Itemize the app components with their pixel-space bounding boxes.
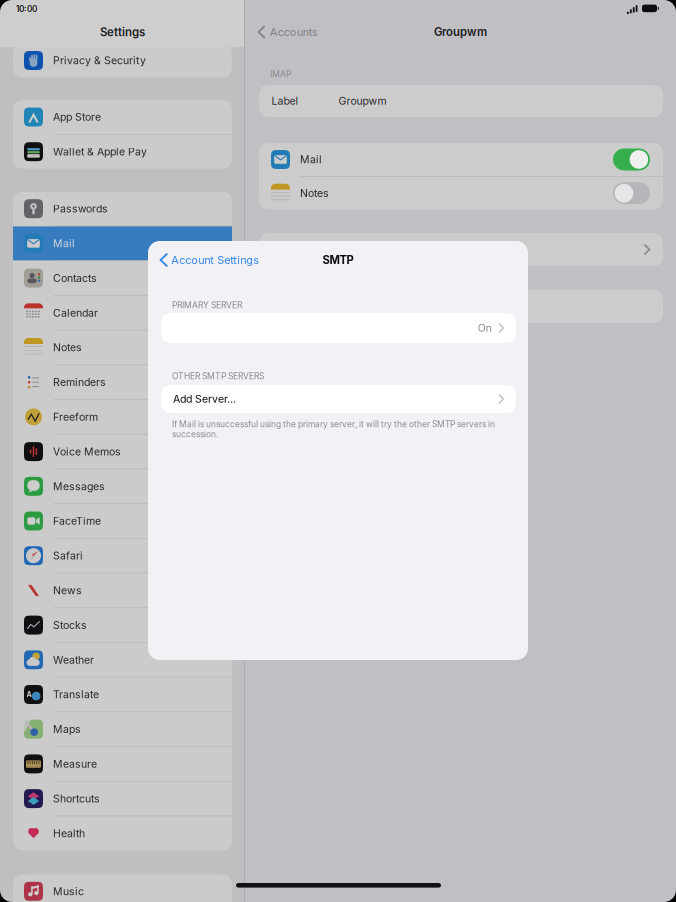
staticText: FaceTime — [53, 515, 101, 527]
staticText: Maps — [53, 723, 81, 735]
staticText: SMTP — [322, 253, 353, 267]
staticText: Measure — [53, 757, 97, 770]
staticText: Weather — [53, 653, 94, 666]
button[interactable]: Safari — [13, 539, 232, 573]
button[interactable]: Account Settings — [155, 247, 264, 273]
staticText: News — [53, 584, 82, 597]
button[interactable]: Add Server... — [161, 385, 516, 413]
staticText: Health — [53, 827, 85, 840]
button[interactable] — [259, 233, 663, 266]
button[interactable]: Shortcuts — [13, 782, 232, 816]
button[interactable]: A — [13, 677, 232, 711]
button[interactable]: News — [13, 573, 232, 607]
staticText: Accounts — [270, 25, 318, 39]
button[interactable]: App Store — [13, 100, 232, 134]
staticText: Mail — [53, 237, 75, 250]
staticText: Add Server... — [173, 393, 236, 405]
button[interactable]: FaceTime — [13, 504, 232, 538]
button[interactable]: Mail — [13, 226, 232, 260]
staticText: Passwords — [53, 202, 108, 215]
staticText: Account Settings — [171, 253, 259, 267]
staticText: Freeform — [53, 410, 98, 423]
staticText: Calendar — [53, 306, 98, 319]
button[interactable]: Messages — [13, 469, 232, 503]
staticText: Messages — [53, 480, 105, 493]
staticText: Shortcuts — [53, 792, 100, 805]
button[interactable]: Accounts — [253, 19, 323, 45]
button[interactable]: On — [161, 313, 516, 343]
button[interactable]: Privacy & Security — [13, 43, 232, 77]
staticText: Safari — [53, 549, 83, 562]
staticText: Mail — [300, 153, 322, 166]
staticText: Privacy & Security — [53, 54, 146, 67]
button[interactable]: Music — [13, 874, 232, 902]
staticText: OTHER SMTP SERVERS — [172, 371, 264, 381]
staticText: On — [478, 322, 492, 334]
staticText: Groupwm — [338, 95, 386, 107]
staticText: App Store — [53, 111, 101, 123]
staticText: If Mail is unsuccessful using the primar… — [172, 419, 495, 439]
button[interactable]: Freeform — [13, 400, 232, 434]
staticText: Label — [271, 95, 298, 107]
staticText: Notes — [300, 187, 329, 199]
button[interactable]: Maps — [13, 712, 232, 746]
button[interactable]: Reminders — [13, 365, 232, 399]
staticText: Voice Memos — [53, 445, 121, 458]
staticText: Wallet & Apple Pay — [53, 145, 147, 158]
button[interactable]: Weather — [13, 643, 232, 677]
staticText: Groupwm — [434, 25, 487, 39]
staticText: IMAP — [270, 69, 291, 79]
button[interactable]: Notes — [259, 177, 663, 210]
staticText: Reminders — [53, 376, 106, 388]
button[interactable]: Contacts — [13, 261, 232, 295]
staticText: Notes — [53, 341, 82, 354]
button[interactable]: Health — [13, 816, 232, 850]
button[interactable]: Label — [259, 85, 663, 117]
button[interactable]: Calendar — [13, 296, 232, 330]
button[interactable]: Measure — [13, 747, 232, 781]
button[interactable]: Wallet & Apple Pay — [13, 135, 232, 169]
staticText: Stocks — [53, 619, 87, 631]
button[interactable]: Passwords — [13, 192, 232, 226]
button[interactable]: Voice Memos — [13, 435, 232, 469]
button[interactable]: Mail — [259, 143, 663, 176]
staticText: Translate — [53, 688, 99, 701]
staticText: Music — [53, 885, 84, 898]
staticText: Settings — [100, 25, 145, 39]
staticText: Contacts — [53, 272, 97, 284]
button[interactable]: Stocks — [13, 608, 232, 642]
staticText: A — [26, 690, 31, 699]
staticText: PRIMARY SERVER — [172, 300, 242, 310]
button[interactable]: Notes — [13, 330, 232, 364]
staticText: 10:00 — [16, 4, 37, 14]
